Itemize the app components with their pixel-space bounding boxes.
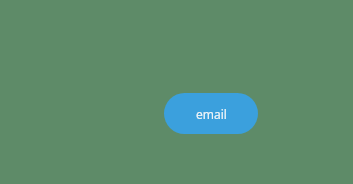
- staticText: email: [196, 106, 227, 122]
- button[interactable]: email: [164, 93, 258, 134]
